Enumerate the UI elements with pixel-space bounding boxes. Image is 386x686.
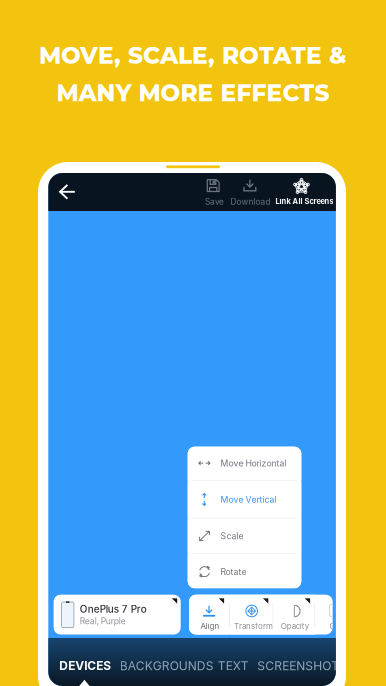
staticText: OnePlus 7 Pro <box>80 603 147 615</box>
staticText: MOVE, SCALE, ROTATE & <box>39 41 347 70</box>
button[interactable]: Download <box>228 176 270 210</box>
button[interactable]: SCREENSHOTS <box>251 652 353 679</box>
staticText: TEXT <box>218 658 249 673</box>
staticText: Move Horizontal <box>220 458 286 468</box>
button[interactable]: Move Horizontal <box>188 446 301 480</box>
button[interactable]: Transform <box>230 595 273 634</box>
staticText: BACKGROUNDS <box>120 658 214 673</box>
staticText: DEVICES <box>59 658 111 673</box>
button[interactable]: Rotate <box>188 554 301 589</box>
staticText: Download <box>230 197 270 207</box>
staticText: Transform <box>234 621 273 631</box>
staticText: Save <box>205 197 224 207</box>
button[interactable]: BACKGROUNDS <box>114 652 220 679</box>
button[interactable]: Align <box>189 595 229 634</box>
button[interactable]: DEVICES <box>53 652 117 679</box>
button[interactable]: Move Vertical <box>188 481 301 518</box>
staticText: Cro <box>330 621 344 631</box>
button[interactable]: Save <box>203 176 229 210</box>
staticText: Link All Screens <box>275 197 333 206</box>
staticText: Scale <box>220 531 243 541</box>
button[interactable]: Opacity <box>273 595 315 634</box>
staticText: Rotate <box>220 566 246 577</box>
button[interactable]: Back <box>52 177 83 206</box>
button[interactable]: Link All Screens <box>273 176 334 210</box>
button[interactable]: Scale <box>188 519 301 553</box>
staticText: Opacity <box>281 621 309 631</box>
staticText: Move Vertical <box>220 494 276 505</box>
button[interactable]: TEXT <box>212 652 255 679</box>
staticText: SCREENSHOTS <box>257 658 347 673</box>
button[interactable]: OnePlus 7 Pro <box>54 595 181 634</box>
staticText: MANY MORE EFFECTS <box>56 79 329 107</box>
staticText: Align <box>200 621 219 631</box>
staticText: Real, Purple <box>80 616 126 626</box>
